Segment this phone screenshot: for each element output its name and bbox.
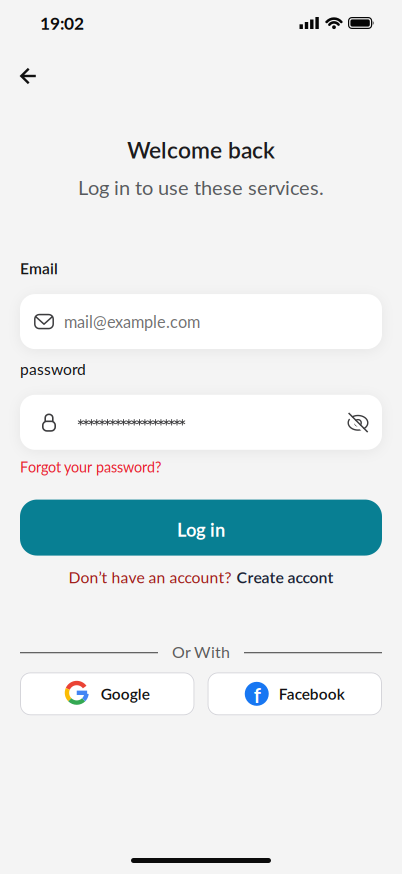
staticText: Welcome back <box>127 136 275 163</box>
staticText: Create accont <box>236 568 333 587</box>
staticText: 19:02 <box>40 13 84 33</box>
button[interactable]: Google <box>20 672 194 715</box>
staticText: Facebook <box>279 684 345 703</box>
button[interactable]: Forgot your password? <box>20 458 161 476</box>
staticText: Google <box>101 684 150 703</box>
staticText: Or With <box>172 642 230 661</box>
button[interactable]: Don’t have an account? <box>68 568 333 587</box>
staticText: mail@example.com <box>64 312 200 331</box>
staticText: Log in <box>177 519 225 540</box>
staticText: Forgot your password? <box>20 458 161 476</box>
staticText: f <box>254 683 261 707</box>
button[interactable]: Show password <box>346 410 370 434</box>
staticText: Log in to use these services. <box>78 175 324 199</box>
button[interactable]: Back <box>20 68 36 84</box>
staticText: password <box>20 360 86 378</box>
button[interactable]: Log in <box>20 500 382 556</box>
staticText: Email <box>20 259 58 278</box>
button[interactable]: Password <box>20 395 382 450</box>
button[interactable]: f <box>207 672 382 715</box>
staticText: Don’t have an account? <box>68 568 231 587</box>
button[interactable]: Email <box>20 294 382 349</box>
